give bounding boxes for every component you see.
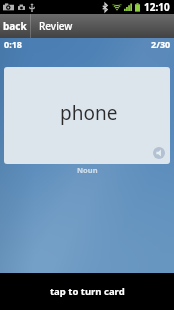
- staticText: 0:18: [4, 38, 22, 50]
- staticText: 2/30: [151, 38, 171, 50]
- button[interactable]: phone: [4, 67, 170, 164]
- staticText: phone: [60, 100, 118, 126]
- staticText: Noun: [77, 165, 98, 175]
- button[interactable]: Play audio: [153, 147, 165, 159]
- button[interactable]: tap to turn card: [0, 273, 174, 310]
- staticText: 12:10: [144, 0, 170, 14]
- staticText: back: [3, 19, 27, 33]
- staticText: tap to turn card: [50, 285, 125, 298]
- button[interactable]: back: [0, 14, 30, 38]
- staticText: Review: [39, 19, 73, 33]
